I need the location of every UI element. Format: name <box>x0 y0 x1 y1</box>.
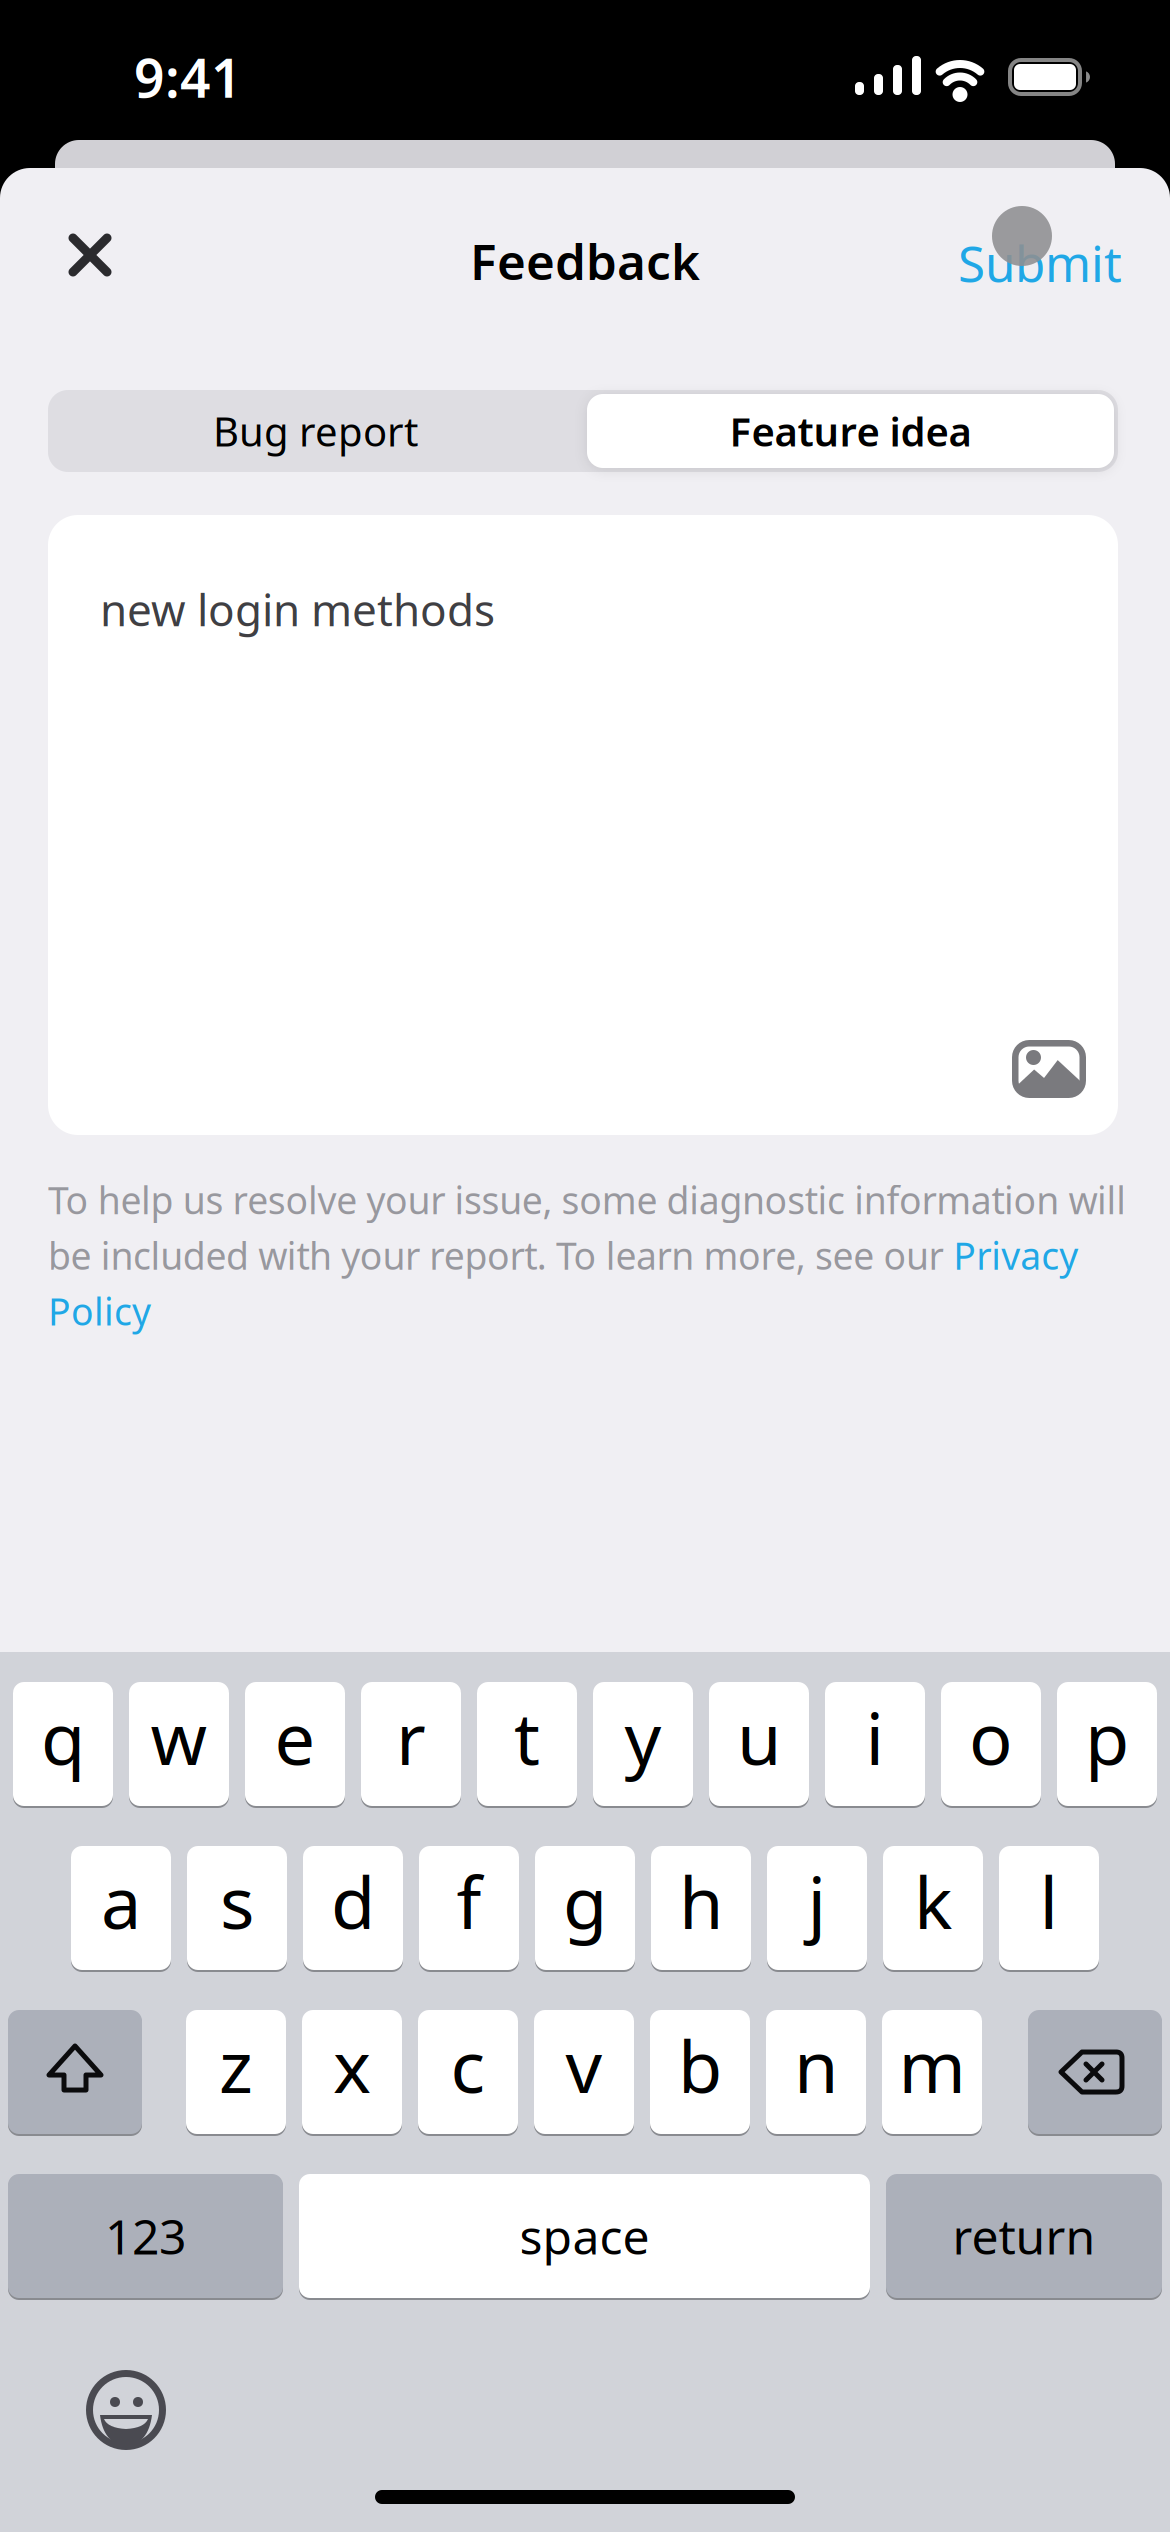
button[interactable]: u <box>709 1682 809 1806</box>
staticText: f <box>456 1853 481 1949</box>
staticText: n <box>794 2017 838 2113</box>
staticText: i <box>865 1689 884 1785</box>
button[interactable]: e <box>245 1682 345 1806</box>
staticText: Privacy <box>953 1231 1078 1280</box>
staticText: Feature idea <box>729 404 971 457</box>
staticText: space <box>519 2204 649 2268</box>
button[interactable]: Feature idea <box>587 394 1114 468</box>
staticText: v <box>565 2017 602 2113</box>
staticText: new login methods <box>100 580 495 638</box>
staticText: 9:41 <box>134 42 242 112</box>
button[interactable]: d <box>303 1846 403 1970</box>
button[interactable]: y <box>593 1682 693 1806</box>
button[interactable]: k <box>883 1846 983 1970</box>
button[interactable]: s <box>187 1846 287 1970</box>
button[interactable]: p <box>1057 1682 1157 1806</box>
button[interactable]: w <box>129 1682 229 1806</box>
button[interactable]: Delete <box>1028 2010 1162 2134</box>
button[interactable]: b <box>650 2010 750 2134</box>
button[interactable]: i <box>825 1682 925 1806</box>
staticText: s <box>220 1853 254 1949</box>
button[interactable]: v <box>534 2010 634 2134</box>
staticText: g <box>563 1853 607 1949</box>
staticText: return <box>952 2204 1095 2268</box>
button[interactable]: m <box>882 2010 982 2134</box>
staticText: y <box>624 1689 661 1785</box>
button[interactable]: j <box>767 1846 867 1970</box>
staticText: Policy <box>48 1286 151 1336</box>
button[interactable]: l <box>999 1846 1099 1970</box>
staticText: c <box>450 2017 485 2113</box>
staticText: be included with your report. To learn m… <box>48 1231 953 1280</box>
button[interactable]: t <box>477 1682 577 1806</box>
button[interactable]: o <box>941 1682 1041 1806</box>
button[interactable]: 123 <box>8 2174 283 2298</box>
staticText: l <box>1039 1853 1058 1949</box>
staticText: p <box>1085 1689 1129 1785</box>
button[interactable]: Emoji <box>86 2370 166 2450</box>
button[interactable]: Submit <box>822 230 1122 295</box>
button[interactable]: Policy <box>48 1286 151 1336</box>
button[interactable]: Close <box>51 216 129 294</box>
staticText: k <box>914 1853 952 1949</box>
button[interactable]: space <box>299 2174 870 2298</box>
button[interactable]: r <box>361 1682 461 1806</box>
button[interactable]: f <box>419 1846 519 1970</box>
button[interactable]: Attach image <box>1012 1040 1086 1098</box>
button[interactable]: return <box>886 2174 1162 2298</box>
staticText: z <box>219 2017 253 2113</box>
staticText: a <box>101 1853 141 1949</box>
button[interactable]: g <box>535 1846 635 1970</box>
staticText: Bug report <box>213 404 418 457</box>
staticText: 123 <box>105 2204 186 2268</box>
button[interactable]: x <box>302 2010 402 2134</box>
staticText: b <box>678 2017 722 2113</box>
button[interactable]: z <box>186 2010 286 2134</box>
staticText: e <box>274 1689 315 1785</box>
button[interactable]: c <box>418 2010 518 2134</box>
staticText: t <box>514 1689 540 1785</box>
staticText: o <box>969 1689 1013 1785</box>
button[interactable]: h <box>651 1846 751 1970</box>
staticText: r <box>396 1689 426 1785</box>
button[interactable]: Bug report <box>48 390 583 472</box>
staticText: x <box>333 2017 371 2113</box>
staticText: u <box>737 1689 781 1785</box>
staticText: h <box>679 1853 723 1949</box>
staticText: j <box>807 1853 826 1949</box>
button[interactable]: n <box>766 2010 866 2134</box>
staticText: Feedback <box>470 228 700 293</box>
staticText: w <box>150 1689 207 1785</box>
button[interactable]: Shift <box>8 2010 142 2134</box>
staticText: To help us resolve your issue, some diag… <box>48 1175 1126 1225</box>
button[interactable]: a <box>71 1846 171 1970</box>
staticText: q <box>41 1689 85 1785</box>
staticText: m <box>898 2017 965 2113</box>
staticText: Submit <box>958 230 1122 295</box>
staticText: d <box>331 1853 375 1949</box>
button[interactable]: q <box>13 1682 113 1806</box>
button[interactable]: Privacy <box>953 1231 1078 1280</box>
